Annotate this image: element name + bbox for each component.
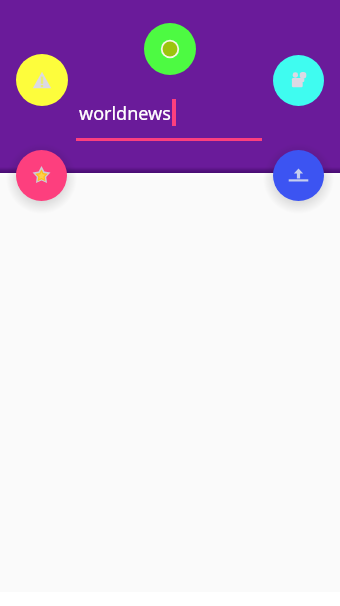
staticText: worldnews [79, 101, 171, 126]
button[interactable]: worldnews [76, 98, 264, 140]
button[interactable]: People [273, 55, 324, 106]
button[interactable]: Favorite [16, 150, 67, 201]
button[interactable]: Warning [16, 54, 68, 106]
button[interactable]: Upload [273, 150, 324, 201]
button[interactable]: Record [144, 23, 196, 75]
